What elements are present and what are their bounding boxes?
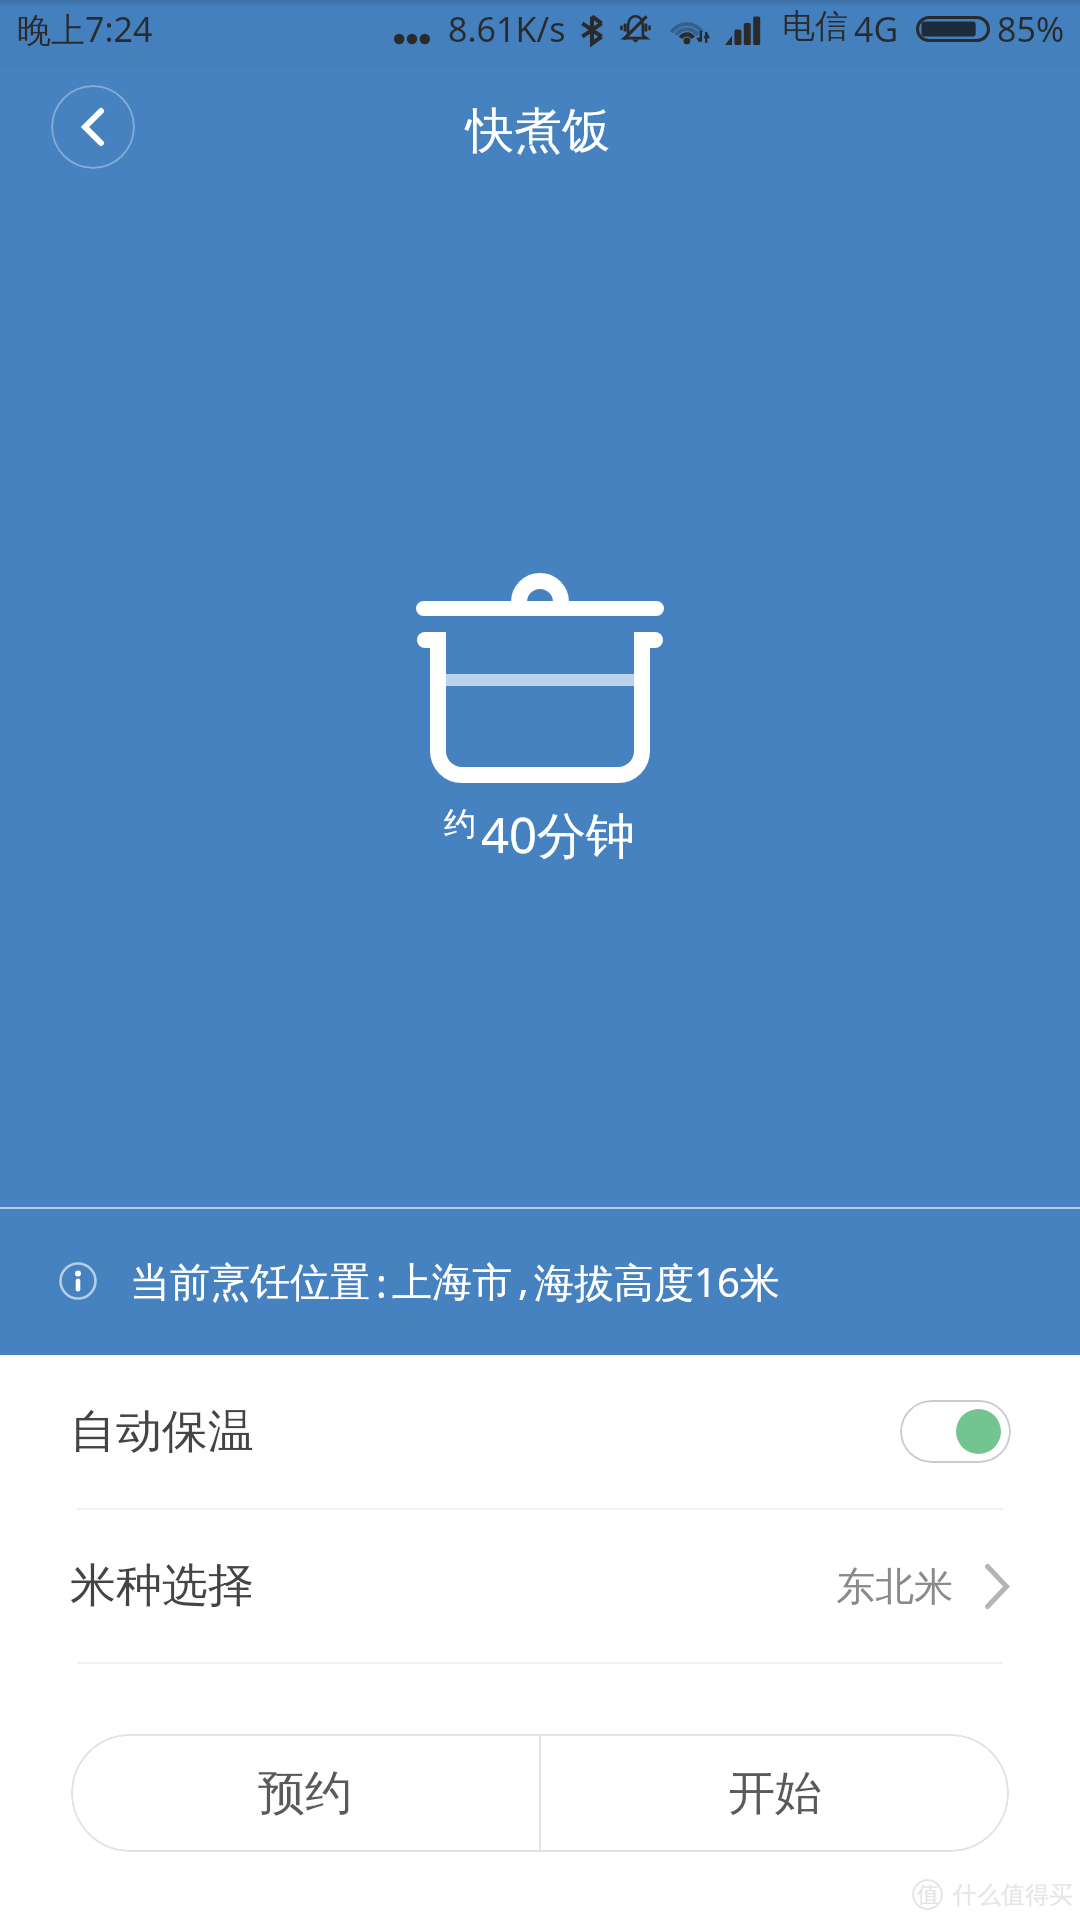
staticText: : <box>376 1255 387 1309</box>
staticText: 值 <box>917 1881 939 1909</box>
staticText: 预约 <box>258 1764 352 1823</box>
staticText: 海拔高度16米 <box>534 1254 780 1309</box>
staticText: 电信 <box>782 5 848 47</box>
staticText: 当前烹饪位置 <box>130 1257 370 1307</box>
staticText: 上海市 <box>392 1257 512 1307</box>
staticText: 什么值得买 <box>953 1880 1073 1910</box>
staticText: 晚上7:24 <box>17 6 153 52</box>
staticText: 85% <box>997 6 1065 52</box>
button[interactable]: 自动保温 <box>0 1355 1080 1508</box>
button[interactable]: 开始 <box>541 1734 1009 1852</box>
staticText: 东北米 <box>836 1562 953 1611</box>
button[interactable]: 当前烹饪位置 <box>0 1207 1080 1355</box>
button[interactable]: 预约 <box>71 1734 539 1852</box>
staticText: 40分钟 <box>481 801 636 868</box>
button[interactable]: Back <box>51 85 135 169</box>
staticText: 自动保温 <box>70 1403 254 1461</box>
staticText: , <box>518 1252 529 1306</box>
button[interactable]: Auto keep warm toggle <box>900 1400 1011 1463</box>
staticText: 4G <box>854 6 899 52</box>
staticText: 8.61K/s <box>448 6 566 52</box>
staticText: 开始 <box>728 1764 822 1823</box>
staticText: 快煮饭 <box>466 101 610 161</box>
staticText: 米种选择 <box>70 1557 254 1615</box>
button[interactable]: 米种选择 <box>0 1510 1080 1662</box>
staticText: 约 <box>444 804 476 844</box>
